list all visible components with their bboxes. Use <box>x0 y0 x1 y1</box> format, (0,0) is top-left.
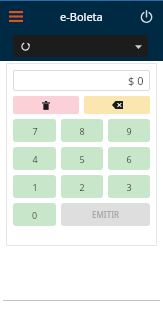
staticText: 6 <box>126 153 132 165</box>
button[interactable]: EMITIR <box>61 203 150 226</box>
staticText: e-Boleta <box>60 9 103 24</box>
staticText: 8 <box>79 125 85 137</box>
staticText: EMITIR <box>92 209 120 220</box>
button[interactable]: Borrar todo <box>13 96 79 114</box>
staticText: $ 0 <box>128 73 144 88</box>
button[interactable]: $ 0 <box>13 70 150 91</box>
button[interactable]: 3 <box>108 175 150 198</box>
button[interactable]: 1 <box>13 175 56 198</box>
button[interactable]: 2 <box>61 175 103 198</box>
button[interactable]: 4 <box>13 147 56 170</box>
button[interactable]: Retroceso <box>84 96 150 114</box>
button[interactable]: 0 <box>13 203 56 226</box>
button[interactable]: 8 <box>61 119 103 142</box>
staticText: 1 <box>32 181 38 193</box>
button[interactable]: 9 <box>108 119 150 142</box>
button[interactable] <box>13 35 148 57</box>
button[interactable]: Logout <box>135 5 157 27</box>
staticText: 7 <box>32 125 38 137</box>
staticText: 5 <box>79 153 85 165</box>
staticText: 3 <box>126 181 132 193</box>
button[interactable]: 6 <box>108 147 150 170</box>
button[interactable]: 5 <box>61 147 103 170</box>
staticText: 2 <box>79 181 85 193</box>
button[interactable]: 7 <box>13 119 56 142</box>
staticText: 9 <box>126 125 132 137</box>
staticText: 4 <box>32 153 38 165</box>
button[interactable]: Menu <box>5 5 27 27</box>
staticText: 0 <box>32 209 38 221</box>
